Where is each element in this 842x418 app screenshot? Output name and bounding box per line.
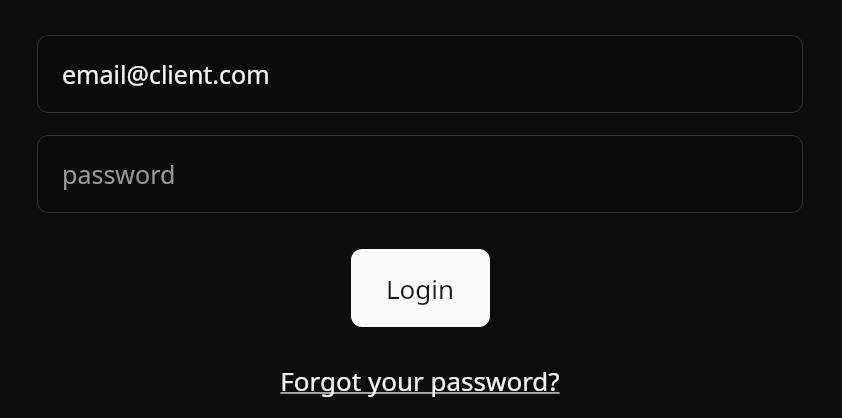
staticText: email@client.com bbox=[62, 57, 270, 91]
staticText: password bbox=[62, 157, 176, 191]
button[interactable]: password bbox=[37, 135, 803, 213]
staticText: Login bbox=[386, 271, 455, 306]
staticText: Forgot your password? bbox=[280, 363, 560, 398]
button[interactable]: email@client.com bbox=[37, 35, 803, 113]
button[interactable]: Forgot your password? bbox=[274, 361, 566, 400]
button[interactable]: Login bbox=[351, 249, 490, 327]
